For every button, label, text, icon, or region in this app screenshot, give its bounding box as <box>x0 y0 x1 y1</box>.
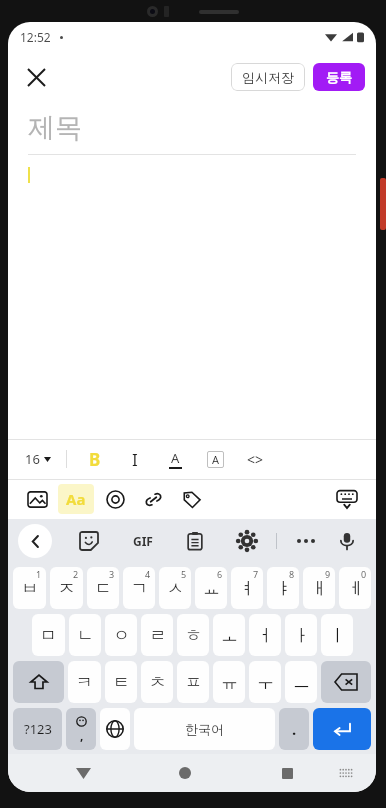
button[interactable]: Bold <box>79 443 111 475</box>
button[interactable]: Clipboard <box>180 526 210 556</box>
staticText: ㅐ <box>311 578 328 599</box>
button[interactable]: ㅡ <box>285 661 317 703</box>
button[interactable] <box>321 661 371 703</box>
staticText: ㅏ <box>293 625 310 646</box>
button[interactable]: Insert image <box>20 482 54 516</box>
button[interactable]: 임시저장 <box>231 63 305 91</box>
staticText: ㄹ <box>149 625 166 646</box>
staticText: ㅡ <box>293 672 310 693</box>
staticText: 6 <box>217 568 223 580</box>
button[interactable]: Italic <box>119 443 151 475</box>
staticText: Aa <box>66 489 86 509</box>
button[interactable]: ㅂ <box>13 567 46 609</box>
staticText: ㅛ <box>203 578 220 599</box>
button[interactable]: Voice input <box>332 526 362 556</box>
staticText: I <box>132 448 138 471</box>
button[interactable]: ㄴ <box>69 614 101 656</box>
button[interactable]: ㅛ <box>195 567 227 609</box>
button[interactable]: ㅑ <box>267 567 299 609</box>
button[interactable]: Home <box>168 756 202 790</box>
button[interactable]: Code <box>239 443 271 475</box>
staticText: ㅔ <box>347 578 364 599</box>
button[interactable]: ㅐ <box>303 567 335 609</box>
staticText: 3 <box>109 568 115 580</box>
button[interactable]: ㅁ <box>32 614 65 656</box>
staticText: 16 <box>25 450 40 468</box>
button[interactable]: ㅋ <box>68 661 101 703</box>
button[interactable]: . <box>279 708 309 750</box>
button[interactable]: Stickers <box>74 526 104 556</box>
button[interactable]: GIF <box>126 526 160 556</box>
button[interactable]: Settings <box>232 526 262 556</box>
staticText: <> <box>247 450 264 469</box>
button[interactable]: ㅏ <box>285 614 317 656</box>
staticText: ㄴ <box>77 625 94 646</box>
button[interactable]: ㅌ <box>105 661 137 703</box>
staticText: , <box>80 727 84 743</box>
staticText: ㅋ <box>76 672 93 693</box>
button[interactable]: ?123 <box>13 708 62 750</box>
button[interactable]: ㅠ <box>213 661 245 703</box>
staticText: 4 <box>145 568 151 580</box>
button[interactable]: Aa <box>58 484 94 514</box>
button[interactable]: ㄹ <box>141 614 173 656</box>
staticText: 한국어 <box>185 721 224 737</box>
staticText: ㅇ <box>113 625 130 646</box>
staticText: ㅂ <box>21 578 38 599</box>
button[interactable]: Tag <box>174 482 208 516</box>
button[interactable]: 한국어 <box>134 708 275 750</box>
staticText: GIF <box>133 533 153 549</box>
staticText: ㅎ <box>185 625 202 646</box>
button[interactable]: ㅇ <box>105 614 137 656</box>
button[interactable]: Back <box>66 756 100 790</box>
button[interactable] <box>100 708 130 750</box>
staticText: ㅅ <box>167 578 184 599</box>
button[interactable]: ㅊ <box>141 661 173 703</box>
button[interactable]: ㄱ <box>123 567 155 609</box>
button[interactable]: Link <box>136 482 170 516</box>
button[interactable]: Recents <box>270 756 304 790</box>
button[interactable]: Underline <box>159 443 191 475</box>
button[interactable]: ㅍ <box>177 661 209 703</box>
staticText: ㅗ <box>221 625 238 646</box>
staticText: 0 <box>361 568 367 580</box>
staticText: ㅁ <box>40 625 57 646</box>
button[interactable]: ㅜ <box>249 661 281 703</box>
button[interactable]: ㅣ <box>321 614 353 656</box>
staticText: ㅍ <box>185 672 202 693</box>
button[interactable]: Back <box>18 524 52 558</box>
button[interactable]: ㅗ <box>213 614 245 656</box>
button[interactable]: ㅎ <box>177 614 209 656</box>
button[interactable]: ㅕ <box>231 567 263 609</box>
staticText: 8 <box>289 568 295 580</box>
button[interactable]: Close <box>16 57 56 97</box>
staticText: 9 <box>325 568 331 580</box>
staticText: 7 <box>253 568 259 580</box>
staticText: 임시저장 <box>242 69 294 85</box>
staticText: 5 <box>181 568 187 580</box>
button[interactable]: , <box>66 708 96 750</box>
staticText: 제목 <box>28 111 82 145</box>
button[interactable] <box>13 661 64 703</box>
button[interactable]: ㅈ <box>50 567 83 609</box>
button[interactable] <box>8 155 376 439</box>
button[interactable]: More <box>291 526 321 556</box>
staticText: ㄷ <box>95 578 112 599</box>
staticText: B <box>89 448 101 471</box>
button[interactable]: ㅓ <box>249 614 281 656</box>
button[interactable] <box>313 708 371 750</box>
button[interactable]: ㄷ <box>87 567 119 609</box>
staticText: . <box>292 719 297 739</box>
button[interactable]: 16 <box>22 447 54 471</box>
button[interactable]: ㅔ <box>339 567 371 609</box>
button[interactable]: Text color <box>199 443 231 475</box>
button[interactable]: Hide keyboard <box>330 482 364 516</box>
staticText: ㅑ <box>275 578 292 599</box>
staticText: ㅣ <box>329 625 346 646</box>
button[interactable]: ㅅ <box>159 567 191 609</box>
button[interactable]: 등록 <box>313 63 365 91</box>
button[interactable]: Mention <box>98 482 132 516</box>
staticText: ㅊ <box>149 672 166 693</box>
button[interactable]: Keyboard switcher <box>331 758 361 788</box>
staticText: A <box>171 449 180 467</box>
